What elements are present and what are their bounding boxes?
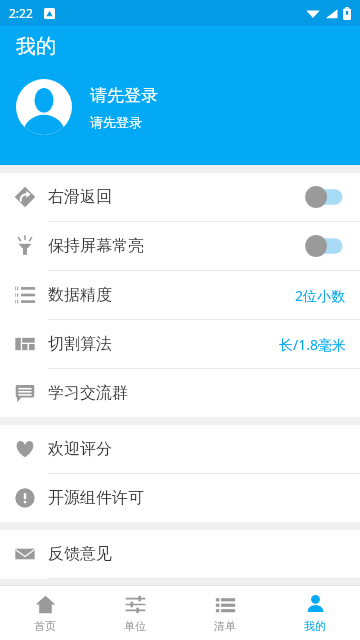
- button[interactable]: 学习交流群: [0, 369, 360, 417]
- staticText: 开源组件许可: [48, 488, 144, 508]
- staticText: 清单: [214, 619, 236, 633]
- button[interactable]: 请先登录: [16, 79, 344, 135]
- button[interactable]: 数据精度: [0, 271, 360, 319]
- staticText: 我的: [16, 34, 56, 59]
- staticText: 保持屏幕常亮: [48, 236, 144, 256]
- button[interactable]: 清单: [180, 586, 270, 640]
- staticText: 请先登录: [90, 85, 158, 106]
- staticText: 右滑返回: [48, 187, 112, 207]
- staticText: 学习交流群: [48, 383, 128, 403]
- staticText: 数据精度: [48, 285, 112, 305]
- button[interactable]: 首页: [0, 586, 90, 640]
- button[interactable]: 切割算法: [0, 320, 360, 368]
- staticText: 长/1.8毫米: [279, 335, 346, 354]
- staticText: 首页: [34, 619, 56, 633]
- button[interactable]: 右滑返回: [0, 173, 360, 221]
- staticText: 请先登录: [90, 114, 142, 130]
- button[interactable]: 欢迎评分: [0, 425, 360, 473]
- button[interactable]: 保持屏幕常亮: [0, 222, 360, 270]
- staticText: 切割算法: [48, 334, 112, 354]
- button[interactable]: 我的: [270, 586, 360, 640]
- staticText: 2:22: [9, 5, 33, 21]
- staticText: 欢迎评分: [48, 439, 112, 459]
- staticText: 2位小数: [295, 286, 346, 305]
- button[interactable]: 单位: [90, 586, 180, 640]
- staticText: 单位: [124, 619, 146, 633]
- button[interactable]: 反馈意见: [0, 530, 360, 578]
- button[interactable]: Toggle switch: [302, 184, 346, 210]
- button[interactable]: Toggle switch: [302, 233, 346, 259]
- staticText: 反馈意见: [48, 544, 112, 564]
- button[interactable]: 开源组件许可: [0, 474, 360, 522]
- staticText: 我的: [304, 619, 326, 633]
